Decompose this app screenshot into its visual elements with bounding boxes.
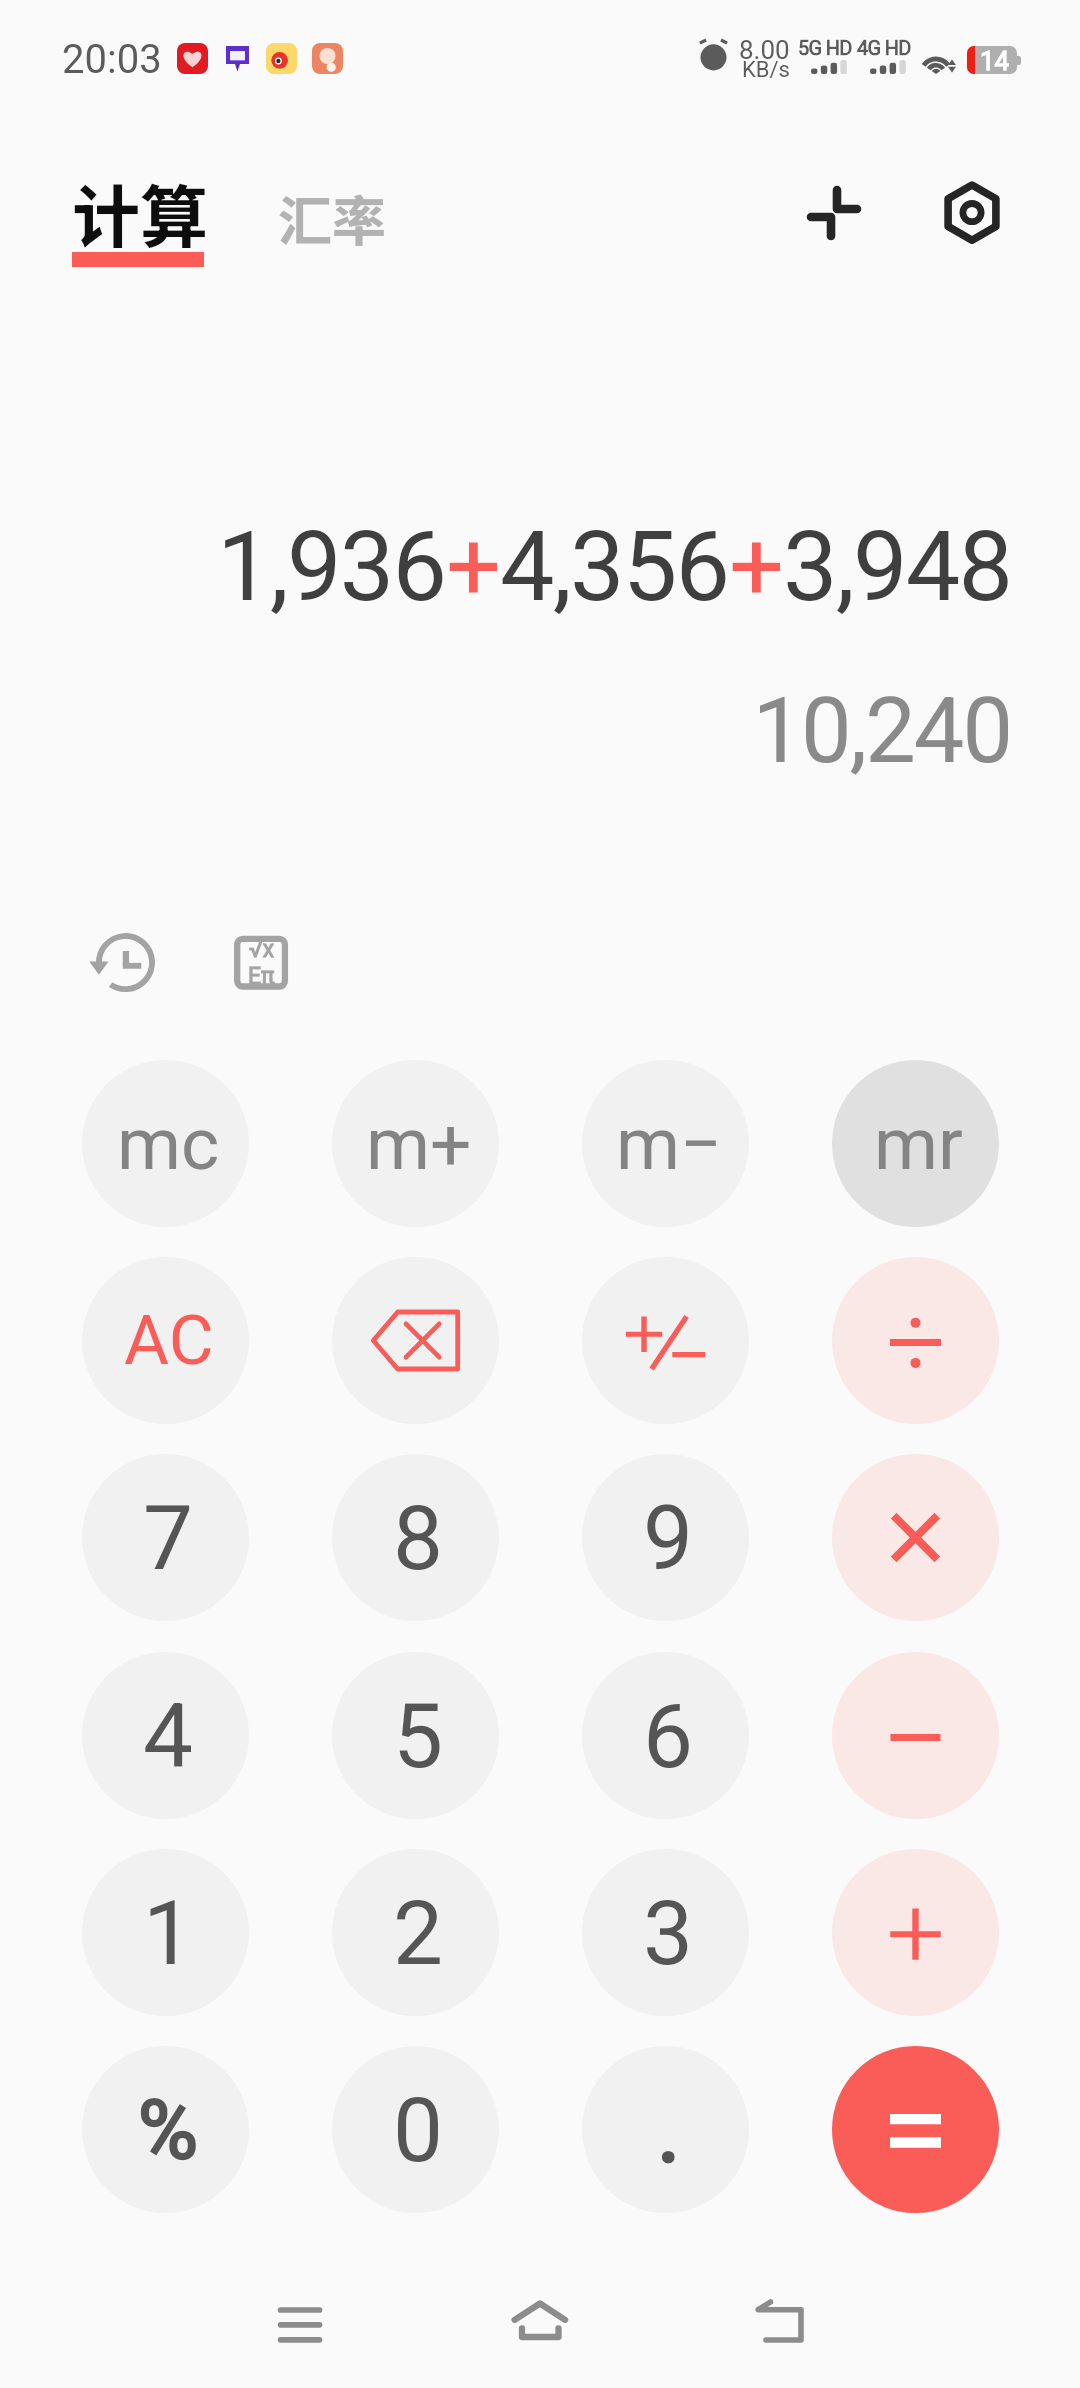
staticText: 9 [643, 1486, 694, 1590]
staticText: 3 [643, 1881, 694, 1985]
button[interactable]: 汇率 [278, 178, 386, 256]
button[interactable]: % [82, 2046, 249, 2213]
staticText: m− [616, 1101, 722, 1187]
staticText: + [729, 510, 783, 624]
button[interactable]: 7 [82, 1454, 249, 1621]
button[interactable]: History [86, 923, 166, 1003]
button[interactable]: . [582, 2046, 749, 2213]
staticText: 0 [393, 2078, 444, 2182]
staticText: 2 [393, 1881, 444, 1985]
staticText: AC [124, 1300, 214, 1381]
staticText: mr [874, 1101, 963, 1187]
button[interactable]: m+ [332, 1060, 499, 1227]
button[interactable]: mc [82, 1060, 249, 1227]
staticText: m+ [366, 1101, 472, 1187]
staticText: 14 [980, 46, 1010, 74]
staticText: Eπ [248, 963, 275, 990]
staticText: √x [249, 936, 275, 963]
button[interactable]: Plus [832, 1849, 999, 2016]
staticText: 8 [393, 1486, 444, 1590]
button[interactable]: 1 [82, 1849, 249, 2016]
button[interactable]: 0 [332, 2046, 499, 2213]
staticText: 20:03 [62, 36, 162, 83]
staticText: 3,948 [783, 510, 1012, 624]
button[interactable]: 9 [582, 1454, 749, 1621]
staticText: 10,240 [0, 679, 1011, 784]
button[interactable]: 计算 [72, 160, 232, 270]
button[interactable]: Backspace [332, 1257, 499, 1424]
staticText: 1,936 [217, 510, 446, 624]
button[interactable]: AC [82, 1257, 249, 1424]
staticText: 计算 [72, 163, 209, 261]
button[interactable]: Settings [932, 173, 1012, 253]
staticText: 汇率 [278, 178, 386, 256]
button[interactable]: 5 [332, 1652, 499, 1819]
button[interactable]: mr [832, 1060, 999, 1227]
staticText: 8.00 [739, 35, 790, 65]
button[interactable]: Plus minus [582, 1257, 749, 1424]
staticText: KB/s [742, 57, 790, 83]
button[interactable]: Split screen [794, 173, 874, 253]
staticText: 4 [143, 1684, 194, 1788]
button[interactable]: 3 [582, 1849, 749, 2016]
button[interactable]: Back [730, 2274, 830, 2374]
staticText: % [138, 2082, 199, 2178]
staticText: 6 [643, 1684, 694, 1788]
staticText: + [446, 510, 500, 624]
button[interactable]: 8 [332, 1454, 499, 1621]
button[interactable]: Multiply [832, 1454, 999, 1621]
button[interactable]: Home [490, 2274, 590, 2374]
button[interactable]: 2 [332, 1849, 499, 2016]
button[interactable]: Divide [832, 1257, 999, 1424]
button[interactable]: 4 [82, 1652, 249, 1819]
button[interactable]: m− [582, 1060, 749, 1227]
button[interactable]: Scientific mode [226, 928, 296, 998]
staticText: mc [117, 1101, 220, 1187]
staticText: 5G HD [798, 36, 852, 59]
button[interactable]: Recent apps [250, 2274, 350, 2374]
staticText: 1 [143, 1881, 194, 1985]
staticText: . [657, 2078, 681, 2182]
button[interactable]: Equals [832, 2046, 999, 2213]
staticText: 7 [143, 1486, 194, 1590]
staticText: 4G HD [857, 36, 911, 59]
staticText: 4,356 [500, 510, 729, 624]
staticText: 5 [393, 1684, 444, 1788]
button[interactable]: 6 [582, 1652, 749, 1819]
button[interactable]: Minus [832, 1652, 999, 1819]
